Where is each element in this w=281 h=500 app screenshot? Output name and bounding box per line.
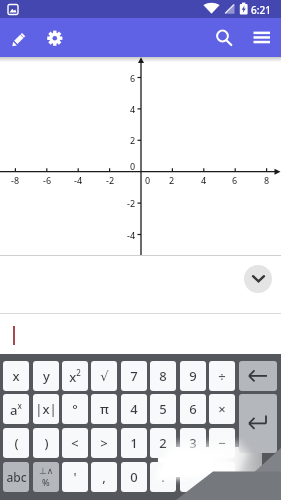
button[interactable]: [239, 394, 277, 453]
staticText: ×: [218, 400, 226, 418]
staticText: 0: [130, 468, 138, 486]
staticText: °: [72, 400, 78, 418]
button[interactable]: [44, 27, 66, 49]
staticText: 7: [130, 367, 138, 385]
staticText: 8: [264, 174, 270, 186]
button[interactable]: ): [33, 428, 59, 458]
button[interactable]: 7: [121, 361, 147, 391]
button[interactable]: 6: [180, 394, 206, 424]
staticText: (: [14, 434, 19, 452]
staticText: 6: [130, 72, 136, 84]
button[interactable]: −: [209, 428, 235, 458]
staticText: ÷: [218, 367, 226, 385]
button[interactable]: °: [62, 394, 88, 424]
staticText: -2: [106, 174, 115, 186]
button[interactable]: 2: [150, 428, 176, 458]
button[interactable]: ÷: [209, 361, 235, 391]
staticText: ': [73, 468, 77, 486]
staticText: 6: [232, 174, 238, 186]
staticText: 2: [169, 174, 175, 186]
staticText: √: [100, 369, 109, 384]
button[interactable]: 4: [121, 394, 147, 424]
staticText: 6: [189, 400, 197, 418]
button[interactable]: [244, 265, 272, 293]
button[interactable]: ax: [3, 394, 29, 424]
button[interactable]: ,: [91, 462, 117, 492]
button[interactable]: [180, 462, 206, 492]
button[interactable]: [33, 462, 59, 492]
button[interactable]: y: [33, 361, 59, 391]
button[interactable]: [209, 462, 235, 492]
staticText: 1: [130, 434, 138, 452]
button[interactable]: 8: [150, 361, 176, 391]
staticText: π: [100, 400, 109, 418]
staticText: -2: [127, 197, 136, 209]
button[interactable]: 9: [180, 361, 206, 391]
button[interactable]: abc: [3, 462, 29, 492]
button[interactable]: .: [150, 462, 176, 492]
staticText: 4: [201, 174, 207, 186]
staticText: 5: [159, 400, 167, 418]
button[interactable]: [8, 28, 30, 50]
button[interactable]: (: [3, 428, 29, 458]
staticText: -4: [74, 174, 83, 186]
staticText: abc: [6, 469, 27, 485]
staticText: 4: [130, 400, 138, 418]
staticText: 8: [159, 367, 167, 385]
button[interactable]: [213, 26, 235, 48]
staticText: %: [42, 476, 50, 488]
staticText: -8: [11, 174, 20, 186]
button[interactable]: 5: [150, 394, 176, 424]
button[interactable]: x2: [62, 361, 88, 391]
staticText: 0: [130, 160, 136, 172]
staticText: 4: [130, 103, 136, 115]
button[interactable]: <: [62, 428, 88, 458]
button[interactable]: ×: [209, 394, 235, 424]
button[interactable]: π: [91, 394, 117, 424]
button[interactable]: 0: [121, 462, 147, 492]
staticText: x2: [69, 367, 81, 385]
staticText: >: [100, 434, 108, 452]
staticText: 9: [189, 367, 197, 385]
staticText: <: [71, 434, 79, 452]
staticText: -4: [127, 229, 136, 241]
staticText: 3: [189, 434, 197, 452]
staticText: |x|: [35, 400, 57, 418]
staticText: 0: [145, 174, 151, 186]
staticText: 2: [130, 134, 136, 146]
staticText: -6: [43, 174, 52, 186]
button[interactable]: 3: [180, 428, 206, 458]
button[interactable]: >: [91, 428, 117, 458]
staticText: 2: [159, 434, 167, 452]
staticText: .: [161, 468, 165, 486]
button[interactable]: [239, 361, 277, 391]
staticText: −: [218, 434, 226, 452]
button[interactable]: |x|: [33, 394, 59, 424]
button[interactable]: x: [3, 361, 29, 391]
staticText: ): [44, 434, 49, 452]
staticText: x: [12, 367, 20, 385]
button[interactable]: ': [62, 462, 88, 492]
staticText: ax: [10, 400, 22, 418]
staticText: ,: [102, 468, 106, 486]
staticText: y: [43, 367, 50, 385]
staticText: 6:21: [251, 3, 271, 17]
staticText: ⊥∧: [39, 466, 54, 476]
button[interactable]: √: [91, 361, 117, 391]
button[interactable]: [252, 29, 272, 45]
button[interactable]: 1: [121, 428, 147, 458]
